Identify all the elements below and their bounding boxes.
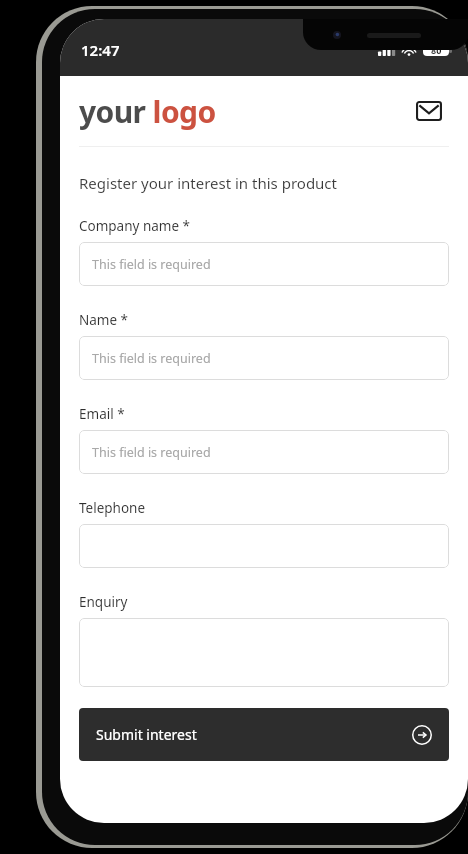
staticText: Register your interest in this product bbox=[79, 173, 337, 193]
staticText: Submit interest bbox=[96, 725, 197, 744]
staticText: 12:47 bbox=[81, 40, 120, 60]
button[interactable]: This field is required bbox=[79, 430, 449, 474]
button[interactable] bbox=[79, 524, 449, 568]
staticText: Enquiry bbox=[79, 593, 128, 611]
button[interactable]: Submit interest bbox=[79, 708, 449, 761]
staticText: This field is required bbox=[92, 256, 211, 273]
button[interactable]: This field is required bbox=[79, 242, 449, 286]
button[interactable]: Contact us by email bbox=[409, 91, 449, 131]
button[interactable]: your logo bbox=[79, 91, 216, 132]
staticText: This field is required bbox=[92, 350, 211, 367]
staticText: Telephone bbox=[79, 499, 146, 517]
button[interactable]: This field is required bbox=[79, 336, 449, 380]
staticText: Email * bbox=[79, 405, 125, 423]
button[interactable] bbox=[79, 618, 449, 687]
staticText: 80 bbox=[431, 44, 442, 56]
staticText: Name * bbox=[79, 311, 129, 329]
staticText: Company name * bbox=[79, 217, 191, 235]
staticText: This field is required bbox=[92, 444, 211, 461]
